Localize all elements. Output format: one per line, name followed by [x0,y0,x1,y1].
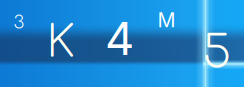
staticText: 4 [105,11,134,66]
staticText: M [157,8,175,32]
staticText: K [46,18,74,67]
staticText: 5 [202,28,230,78]
staticText: 3 [13,12,24,33]
